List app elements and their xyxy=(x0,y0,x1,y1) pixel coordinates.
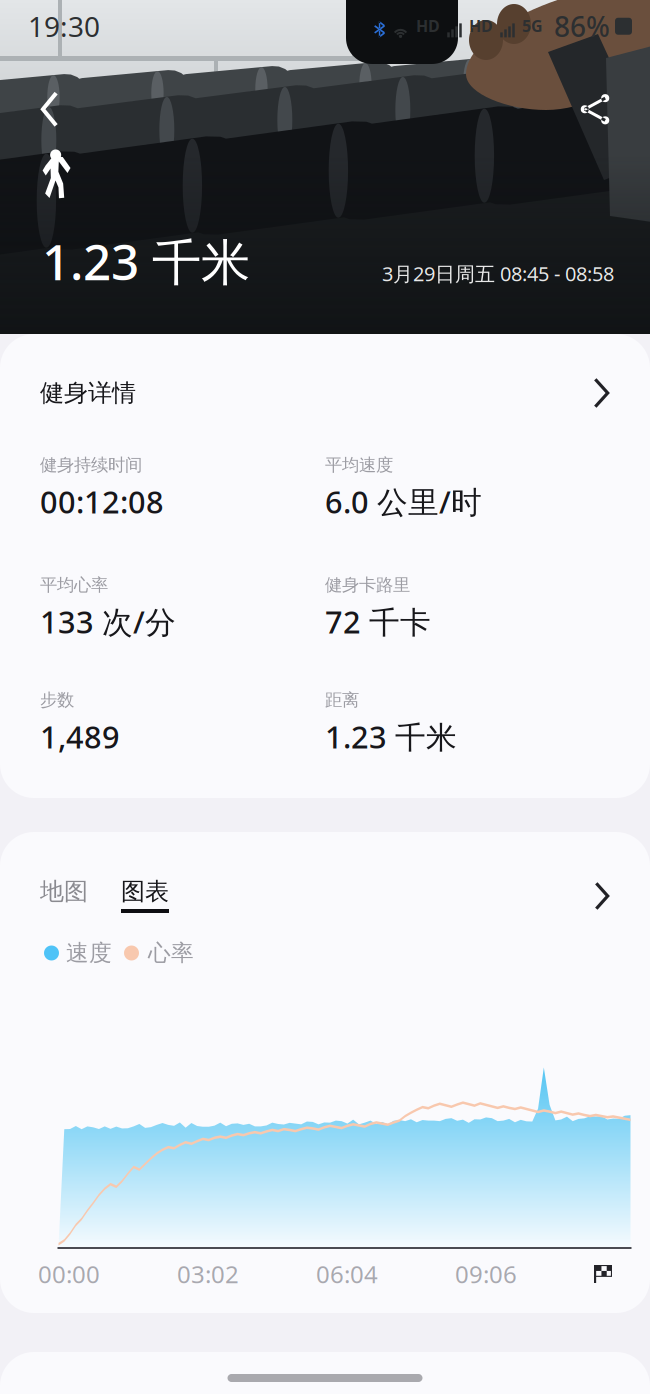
staticText: 06:04 xyxy=(316,1258,378,1290)
staticText: 19:30 xyxy=(28,8,100,45)
staticText: 平均心率 xyxy=(40,574,108,596)
staticText: 心率 xyxy=(148,939,194,967)
staticText: HD xyxy=(416,15,440,36)
staticText: 133 次/分 xyxy=(40,601,176,642)
staticText: 健身卡路里 xyxy=(325,574,410,596)
staticText: HD xyxy=(469,15,493,36)
button[interactable]: Back xyxy=(22,76,77,142)
staticText: 00:00 xyxy=(38,1258,100,1290)
staticText: 1.23 千米 xyxy=(42,228,250,294)
staticText: 1.23 千米 xyxy=(325,716,457,757)
staticText: 09:06 xyxy=(455,1258,517,1290)
staticText: 03:02 xyxy=(177,1258,239,1290)
staticText: 72 千卡 xyxy=(325,601,431,642)
staticText: 1,489 xyxy=(40,716,120,757)
button[interactable]: 健身详情 xyxy=(0,334,650,456)
button[interactable]: Share xyxy=(562,76,628,142)
staticText: 平均速度 xyxy=(325,454,393,476)
staticText: 6.0 公里/时 xyxy=(325,481,482,522)
staticText: 00:12:08 xyxy=(40,481,164,522)
staticText: 86% xyxy=(554,8,610,45)
staticText: 地图 xyxy=(40,877,88,906)
staticText: 健身持续时间 xyxy=(40,454,142,476)
staticText: 距离 xyxy=(325,689,359,711)
staticText: 速度 xyxy=(66,939,112,967)
staticText: 3月29日周五 08:45 - 08:58 xyxy=(382,260,614,287)
staticText: 步数 xyxy=(40,689,74,711)
staticText: 5G xyxy=(522,15,543,36)
staticText: 健身详情 xyxy=(40,378,136,408)
staticText: 图表 xyxy=(121,877,169,906)
button[interactable]: 地图 xyxy=(0,832,650,913)
